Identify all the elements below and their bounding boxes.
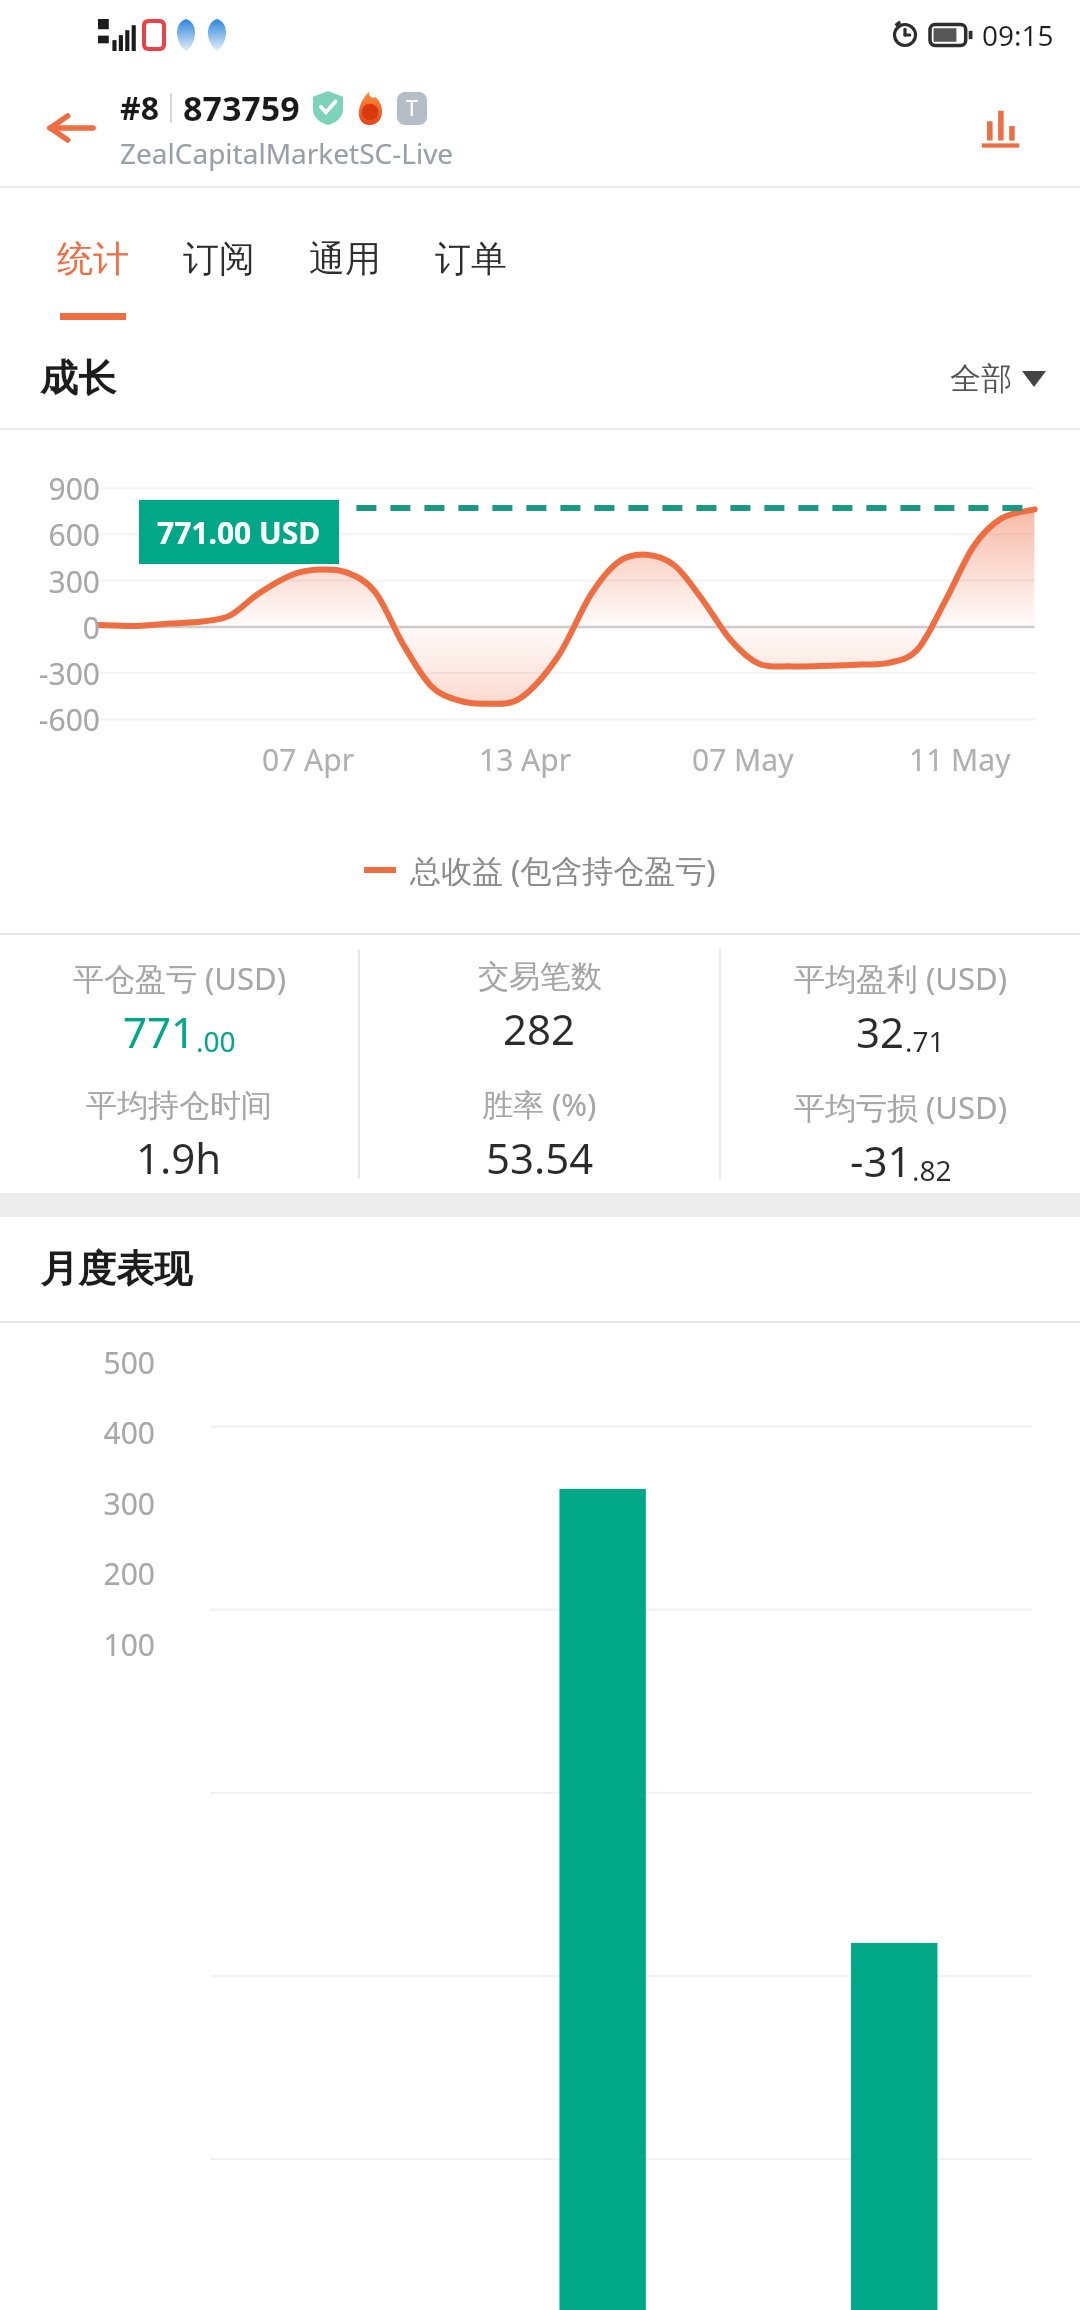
staticText: 07 May (692, 739, 794, 780)
staticText: 900 (0, 468, 100, 509)
button[interactable]: 平仓盈亏 (USD) (0, 935, 358, 1193)
staticText: 月度表现 (40, 1245, 192, 1293)
staticText: 0 (0, 607, 100, 648)
staticText: 1.9h (136, 1129, 222, 1186)
staticText: 成长 (40, 354, 116, 402)
staticText: 09:15 (982, 16, 1054, 54)
staticText: ZealCapitalMarketSC-Live (120, 134, 454, 172)
staticText: @a魁拔 (936, 2206, 1044, 2248)
button[interactable]: 通用 (282, 188, 408, 328)
staticText: .00 (196, 1022, 236, 1060)
button[interactable]: Statistics (964, 91, 1038, 165)
staticText: 771.00 USD (157, 512, 321, 553)
staticText: 873759 (183, 85, 300, 131)
staticText: -600 (0, 699, 100, 740)
staticText: 07 Apr (262, 739, 355, 780)
button[interactable]: Back (36, 93, 106, 163)
staticText: 282 (503, 1000, 576, 1057)
staticText: 总收益 (包含持仓盈亏) (410, 849, 716, 891)
staticText: 32 (856, 1003, 905, 1060)
staticText: 100 (0, 1624, 155, 1665)
button[interactable]: 统计 (30, 188, 156, 328)
staticText: 平均亏损 (USD) (794, 1086, 1007, 1128)
staticText: .71 (905, 1022, 945, 1060)
staticText: 胜率 (%) (482, 1083, 597, 1125)
staticText: 300 (0, 1483, 155, 1524)
staticText: 300 (0, 561, 100, 602)
staticText: 交易笔数 (478, 957, 602, 996)
staticText: T (406, 94, 418, 123)
staticText: 订单 (435, 236, 507, 281)
staticText: 200 (0, 1553, 155, 1594)
staticText: 平仓盈亏 (USD) (73, 957, 286, 999)
staticText: 400 (0, 1412, 155, 1453)
staticText: 订阅 (183, 236, 255, 281)
button[interactable]: 交易笔数 (360, 935, 719, 1193)
staticText: 通用 (309, 236, 381, 281)
staticText: #8 (120, 86, 159, 130)
staticText: 统计 (57, 236, 129, 281)
staticText: -300 (0, 653, 100, 694)
staticText: 53.54 (486, 1129, 594, 1186)
staticText: .82 (912, 1151, 952, 1189)
staticText: 11 May (909, 739, 1011, 780)
staticText: -31 (850, 1132, 912, 1189)
staticText: 平均持仓时间 (86, 1086, 272, 1125)
button[interactable]: 平均盈利 (USD) (721, 935, 1080, 1193)
button[interactable]: 全部 (950, 359, 1046, 398)
staticText: 平均盈利 (USD) (794, 957, 1007, 999)
staticText: 600 (0, 514, 100, 555)
button[interactable]: 订单 (408, 188, 534, 328)
staticText: 771 (123, 1003, 196, 1060)
staticText: 全部 (950, 359, 1012, 398)
staticText: 13 Apr (479, 739, 572, 780)
button[interactable]: 订阅 (156, 188, 282, 328)
staticText: 500 (0, 1342, 155, 1383)
